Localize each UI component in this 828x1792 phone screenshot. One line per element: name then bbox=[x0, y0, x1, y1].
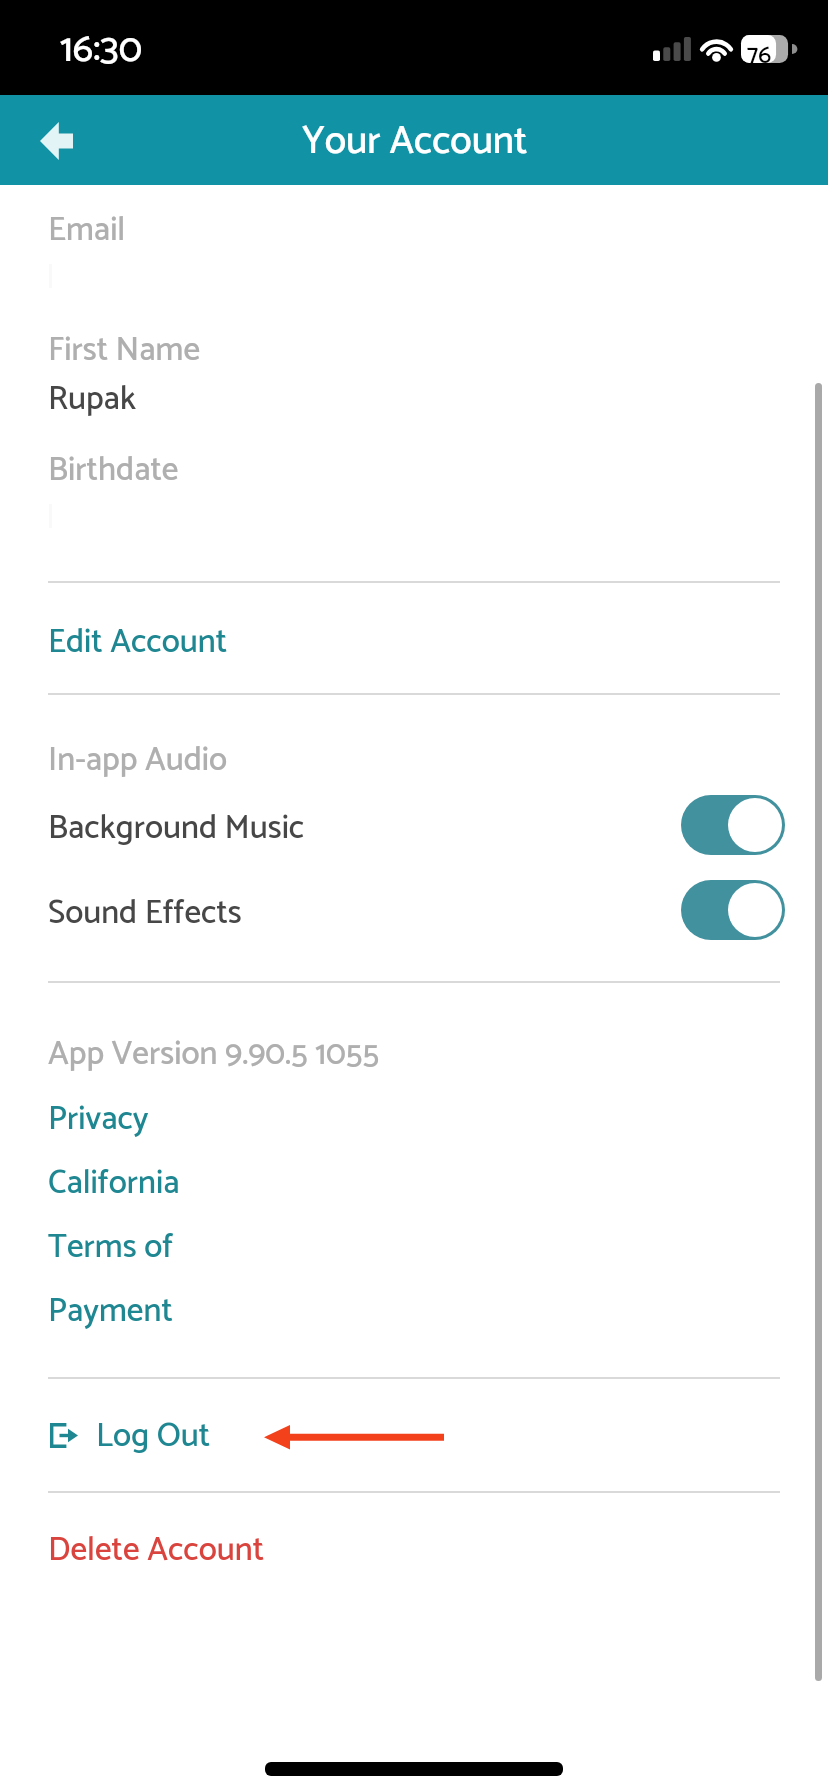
staticText: Edit Account bbox=[48, 616, 228, 670]
staticText: Birthdate bbox=[48, 444, 179, 498]
staticText: Payment Policy bbox=[48, 1285, 253, 1337]
staticText: Email bbox=[48, 204, 126, 258]
staticText: 16:30 bbox=[60, 18, 142, 82]
button[interactable]: Payment Policy bbox=[48, 1279, 253, 1331]
button[interactable]: Log Out bbox=[48, 1404, 328, 1470]
button[interactable]: Delete Account bbox=[48, 1521, 271, 1575]
staticText: Sound Effects bbox=[48, 887, 242, 941]
button[interactable]: California Privacy bbox=[48, 1151, 280, 1203]
staticText: Terms of Service bbox=[48, 1221, 266, 1273]
staticText: Rupak bbox=[48, 373, 137, 427]
staticText: In-app Audio bbox=[48, 734, 227, 788]
button[interactable]: Privacy Policy bbox=[48, 1087, 230, 1139]
button[interactable]: Sound Effects bbox=[48, 878, 780, 942]
button[interactable]: Terms of Service bbox=[48, 1215, 266, 1267]
button[interactable]: Back bbox=[40, 122, 73, 160]
button[interactable]: Background Music bbox=[48, 793, 780, 857]
button[interactable]: Edit Account bbox=[48, 612, 234, 670]
staticText: App Version 9.90.5 1055 bbox=[48, 1028, 379, 1082]
staticText: First Name bbox=[48, 324, 201, 378]
staticText: Delete Account bbox=[48, 1524, 265, 1578]
staticText: 76 bbox=[747, 35, 772, 63]
staticText: Privacy Policy bbox=[48, 1093, 230, 1145]
staticText: Log Out bbox=[96, 1410, 211, 1464]
staticText: Background Music bbox=[48, 802, 305, 856]
staticText: Your Account bbox=[302, 110, 528, 174]
staticText: California Privacy bbox=[48, 1157, 280, 1209]
